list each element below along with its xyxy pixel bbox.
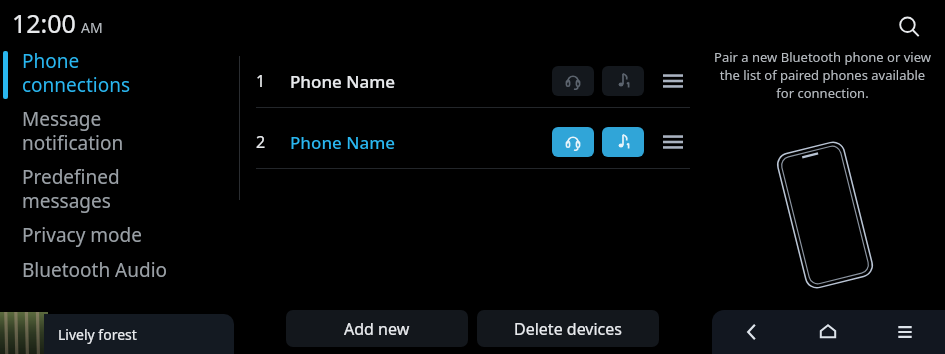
staticText: 12:00: [12, 6, 76, 40]
staticText: Phone connections: [22, 48, 131, 97]
staticText: Predefined messages: [22, 164, 120, 213]
button[interactable]: Privacy mode: [22, 222, 232, 248]
button[interactable]: Bluetooth Audio: [22, 257, 232, 283]
button[interactable]: Search: [890, 8, 928, 46]
staticText: Privacy mode: [22, 222, 142, 248]
button[interactable]: Call audio: [552, 66, 594, 96]
staticText: 2: [256, 131, 266, 153]
staticText: Phone Name: [290, 70, 396, 93]
staticText: Lively forest: [58, 325, 137, 344]
button[interactable]: 2: [256, 116, 690, 168]
staticText: Pair a new Bluetooth phone or view the l…: [710, 48, 935, 102]
staticText: Delete devices: [514, 318, 622, 340]
button[interactable]: Back: [730, 310, 774, 354]
button[interactable]: Add new: [286, 310, 468, 347]
button[interactable]: Media audio: [602, 66, 644, 96]
staticText: Bluetooth Audio: [22, 257, 168, 283]
button[interactable]: Media audio: [602, 127, 644, 157]
button[interactable]: Home: [806, 310, 850, 354]
button[interactable]: Reorder: [658, 66, 688, 96]
staticText: Add new: [344, 318, 410, 340]
staticText: 1: [256, 70, 266, 92]
button[interactable]: 1: [256, 55, 690, 107]
button[interactable]: Menu: [883, 310, 927, 354]
staticText: AM: [81, 18, 103, 37]
button[interactable]: Call audio: [552, 127, 594, 157]
other: Phone illustration: [770, 140, 880, 290]
button[interactable]: Delete devices: [477, 310, 659, 347]
button[interactable]: Lively forest: [44, 314, 234, 354]
button[interactable]: Phone connections: [22, 48, 232, 97]
button[interactable]: Reorder: [658, 127, 688, 157]
staticText: Phone Name: [290, 131, 396, 154]
staticText: Message notification: [22, 106, 124, 155]
button[interactable]: Predefined messages: [22, 164, 232, 213]
button[interactable]: Message notification: [22, 106, 232, 155]
